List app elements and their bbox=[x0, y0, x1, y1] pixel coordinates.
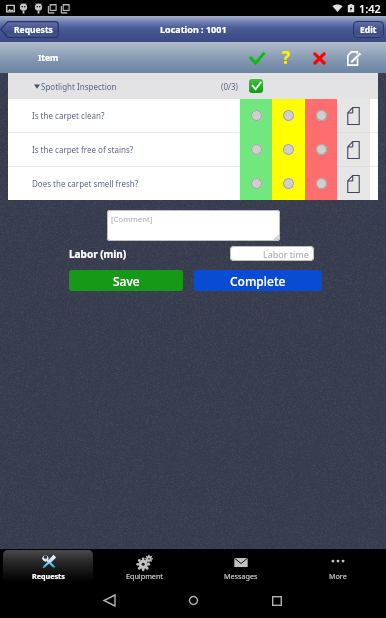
staticText: Edit bbox=[360, 24, 377, 36]
button[interactable]: Recent apps bbox=[235, 583, 319, 618]
button[interactable]: Requests bbox=[0, 21, 59, 38]
staticText: Requests bbox=[32, 571, 65, 581]
button[interactable]: Unknown bbox=[272, 133, 305, 166]
button[interactable]: Add note bbox=[337, 99, 370, 132]
staticText: Spotlight Inspection bbox=[41, 81, 117, 92]
staticText: 1:42 bbox=[359, 1, 381, 16]
staticText: Is the carpet free of stains? bbox=[32, 144, 134, 155]
staticText: [Comment] bbox=[111, 214, 153, 225]
button[interactable]: Edit bbox=[340, 44, 368, 72]
button[interactable]: More bbox=[289, 549, 386, 583]
staticText: Complete bbox=[230, 273, 286, 289]
staticText: (0/3) bbox=[221, 81, 238, 92]
staticText: Does the carpet smell fresh? bbox=[32, 178, 139, 189]
staticText: More bbox=[329, 571, 347, 581]
button[interactable]: Complete bbox=[194, 270, 322, 291]
button[interactable]: Fail bbox=[305, 133, 337, 166]
staticText: Labor time bbox=[263, 248, 309, 260]
button[interactable]: Complete section bbox=[249, 79, 263, 93]
staticText: Item bbox=[38, 52, 59, 64]
staticText: ? bbox=[282, 46, 291, 69]
button[interactable]: Back bbox=[67, 583, 151, 618]
button[interactable]: [Comment] bbox=[107, 210, 280, 241]
button[interactable]: Equipment bbox=[96, 549, 192, 583]
button[interactable]: Unknown bbox=[272, 167, 305, 200]
button[interactable]: Labor time bbox=[230, 246, 314, 261]
staticText: Requests bbox=[14, 24, 53, 36]
staticText: Labor (min) bbox=[69, 247, 127, 261]
button[interactable]: Messages bbox=[192, 549, 289, 583]
button[interactable]: Spotlight Inspection bbox=[8, 73, 378, 99]
button[interactable]: Pass bbox=[240, 133, 272, 166]
staticText: Save bbox=[113, 273, 140, 289]
button[interactable]: Fail bbox=[305, 167, 337, 200]
button[interactable]: Mark all unknown bbox=[272, 44, 300, 72]
button[interactable]: Mark all pass bbox=[243, 44, 271, 72]
button[interactable]: Add note bbox=[337, 133, 370, 166]
button[interactable]: Unknown bbox=[272, 99, 305, 132]
staticText: Is the carpet clean? bbox=[32, 110, 105, 121]
button[interactable]: Mark all fail bbox=[305, 44, 333, 72]
staticText: Messages bbox=[224, 571, 258, 581]
button[interactable]: Edit bbox=[353, 21, 384, 38]
button[interactable]: Home bbox=[151, 583, 235, 618]
button[interactable]: Save bbox=[69, 270, 183, 291]
staticText: Equipment bbox=[126, 571, 163, 581]
button[interactable]: Pass bbox=[240, 167, 272, 200]
button[interactable]: Add note bbox=[337, 167, 370, 200]
button[interactable]: Fail bbox=[305, 99, 337, 132]
button[interactable]: Pass bbox=[240, 99, 272, 132]
staticText: Location : 1001 bbox=[160, 23, 227, 35]
button[interactable]: Requests bbox=[0, 549, 96, 583]
